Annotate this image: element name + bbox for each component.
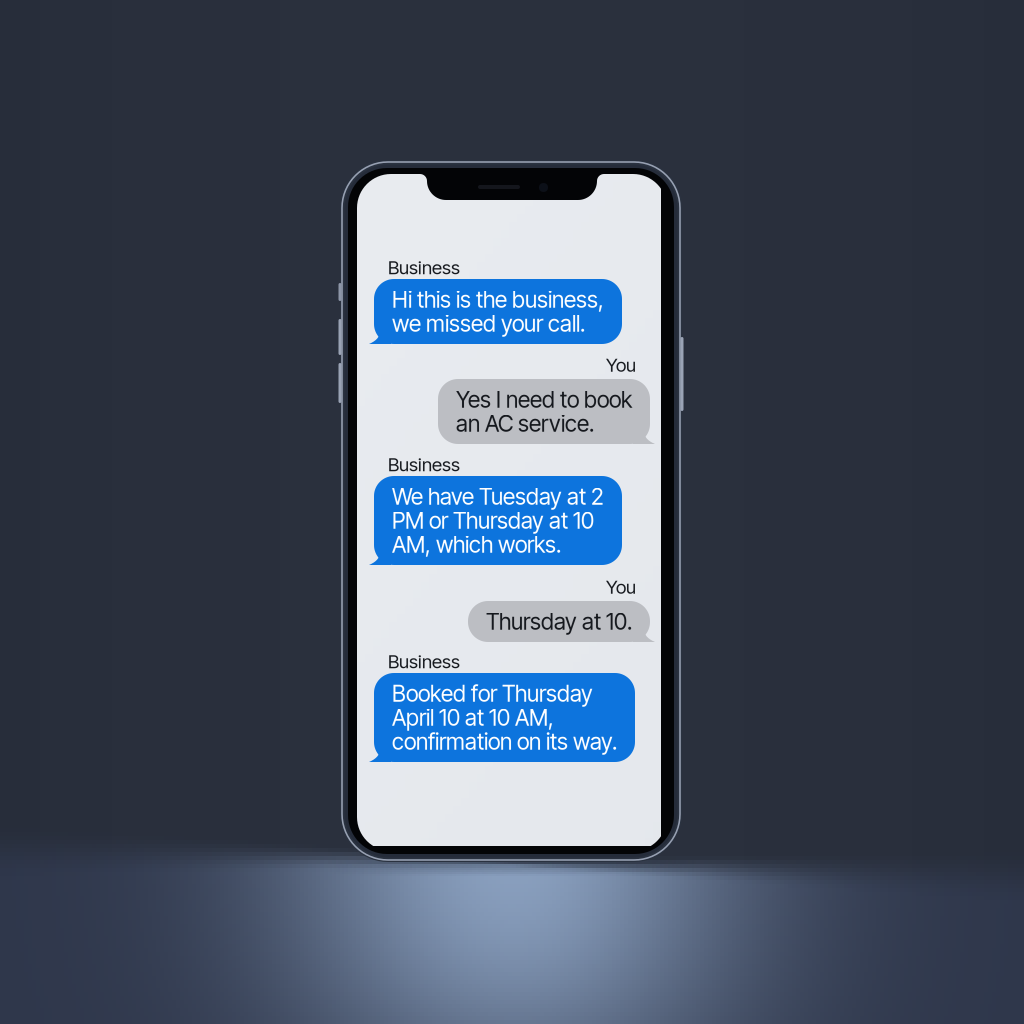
staticText: Business bbox=[388, 453, 460, 476]
button[interactable]: Yes I need to book bbox=[438, 379, 667, 444]
staticText: You bbox=[606, 354, 636, 376]
staticText: we missed your call. bbox=[392, 310, 585, 337]
button[interactable]: Thursday at 10. bbox=[468, 601, 667, 642]
staticText: Business bbox=[388, 650, 460, 673]
staticText: Business bbox=[388, 256, 460, 279]
staticText: Hi this is the business, bbox=[392, 286, 604, 313]
staticText: Yes I need to book bbox=[456, 386, 632, 413]
button[interactable]: Hi this is the business, bbox=[357, 279, 622, 344]
staticText: We have Tuesday at 2 bbox=[392, 483, 604, 510]
staticText: PM or Thursday at 10 bbox=[392, 507, 594, 534]
staticText: Booked for Thursday bbox=[392, 680, 593, 707]
staticText: confirmation on its way. bbox=[392, 728, 617, 755]
button[interactable]: We have Tuesday at 2 bbox=[357, 476, 622, 565]
staticText: AM, which works. bbox=[392, 531, 561, 558]
staticText: Thursday at 10. bbox=[486, 608, 632, 635]
staticText: an AC service. bbox=[456, 410, 594, 437]
button[interactable]: Booked for Thursday bbox=[357, 673, 635, 762]
staticText: April 10 at 10 AM, bbox=[392, 704, 554, 731]
staticText: You bbox=[606, 576, 636, 598]
